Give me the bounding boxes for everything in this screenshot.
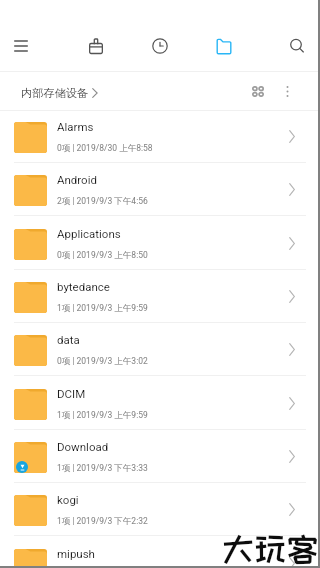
button[interactable]: Download: [0, 431, 320, 483]
button[interactable]: Open Android: [279, 176, 305, 202]
button[interactable]: Recent: [138, 0, 182, 72]
button[interactable]: Menu: [0, 0, 43, 72]
staticText: 0项 | 2019/9/3 上午3:02: [57, 356, 148, 367]
button[interactable]: bytedance: [0, 271, 320, 323]
button[interactable]: Open data: [279, 336, 305, 362]
button[interactable]: Open Alarms: [279, 123, 305, 149]
staticText: 1项 | 2019/9/3 上午9:59: [57, 410, 148, 421]
staticText: 0项 | 2019/9/3 上午8:50: [57, 250, 148, 261]
staticText: 大玩客: [222, 531, 319, 566]
staticText: DCIM: [57, 387, 86, 400]
button[interactable]: More options: [273, 77, 301, 105]
staticText: 2项 | 2019/9/3 下午4:56: [57, 196, 148, 207]
button[interactable]: Open DCIM: [279, 390, 305, 416]
button[interactable]: Open kogi: [279, 496, 305, 522]
staticText: kogi: [57, 493, 79, 506]
staticText: 0项 | 2019/8/30 上午8:58: [57, 143, 153, 154]
button[interactable]: DCIM: [0, 378, 320, 430]
staticText: Android: [57, 173, 97, 186]
staticText: 1项 | 2019/9/3 下午2:32: [57, 516, 148, 527]
staticText: 内部存储设备: [21, 86, 89, 100]
staticText: Applications: [57, 227, 121, 240]
button[interactable]: Cleaner: [74, 0, 118, 72]
staticText: data: [57, 333, 80, 346]
staticText: 1项 | 2019/9/3 下午3:33: [57, 463, 148, 474]
button[interactable]: Search: [275, 0, 319, 72]
button[interactable]: kogi: [0, 484, 320, 536]
button[interactable]: mipush: [0, 538, 320, 568]
button[interactable]: Files: [202, 0, 246, 72]
button[interactable]: Open bytedance: [279, 283, 305, 309]
button[interactable]: Android: [0, 164, 320, 216]
button[interactable]: 内部存储设备: [21, 74, 102, 112]
button[interactable]: Open Download: [279, 443, 305, 469]
button[interactable]: Open mipush: [279, 550, 305, 568]
staticText: 1项 | 2019/9/3 上午9:59: [57, 303, 148, 314]
button[interactable]: Applications: [0, 218, 320, 270]
button[interactable]: Open Applications: [279, 230, 305, 256]
staticText: Download: [57, 440, 109, 453]
button[interactable]: Grid view: [244, 77, 272, 105]
button[interactable]: Alarms: [0, 111, 320, 163]
staticText: Alarms: [57, 120, 94, 133]
button[interactable]: data: [0, 324, 320, 376]
staticText: bytedance: [57, 280, 110, 293]
staticText: mipush: [57, 547, 95, 560]
